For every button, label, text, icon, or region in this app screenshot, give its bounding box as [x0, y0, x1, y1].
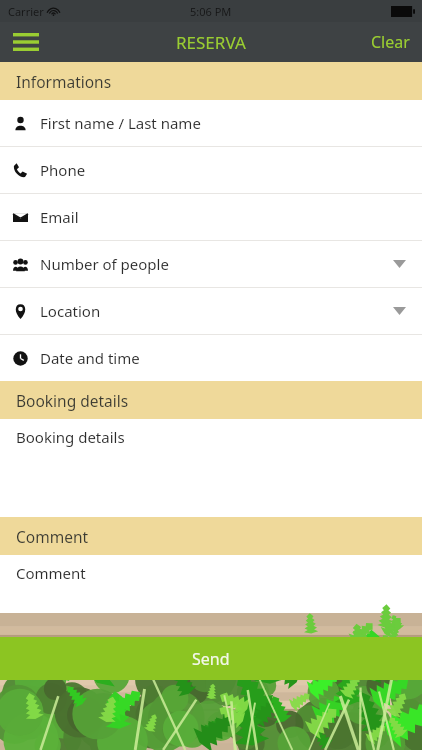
staticText: Booking details: [16, 390, 129, 411]
staticText: Phone: [40, 160, 86, 180]
staticText: Comment: [16, 563, 86, 583]
button[interactable]: First name / Last name: [0, 100, 422, 147]
button[interactable]: Clear: [359, 22, 422, 62]
staticText: Date and time: [40, 348, 140, 368]
button[interactable]: Comment: [0, 555, 422, 591]
button[interactable]: Booking details: [0, 419, 422, 455]
button[interactable]: Menu: [0, 22, 52, 62]
staticText: Number of people: [40, 254, 169, 274]
staticText: First name / Last name: [40, 113, 201, 133]
staticText: Send: [192, 648, 230, 670]
button[interactable]: Number of people: [0, 241, 422, 288]
button[interactable]: Email: [0, 194, 422, 241]
staticText: Location: [40, 301, 101, 321]
staticText: Booking details: [16, 427, 125, 447]
staticText: Comment: [16, 526, 89, 547]
button[interactable]: Phone: [0, 147, 422, 194]
staticText: Informations: [16, 71, 112, 92]
staticText: Clear: [371, 31, 410, 53]
button[interactable]: Send: [0, 637, 422, 680]
staticText: RESERVA: [176, 31, 246, 54]
staticText: 5:06 PM: [190, 4, 232, 19]
button[interactable]: Date and time: [0, 335, 422, 381]
staticText: Email: [40, 207, 79, 227]
button[interactable]: Location: [0, 288, 422, 335]
staticText: Carrier: [8, 4, 44, 19]
